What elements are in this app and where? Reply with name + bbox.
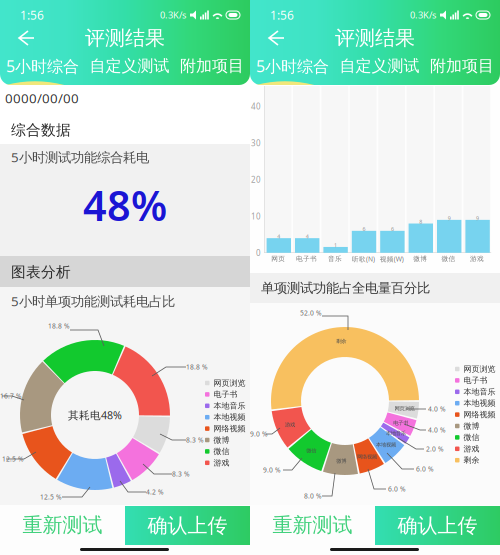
staticText: 1 — [334, 242, 337, 249]
staticText: 16.7 % — [0, 392, 22, 400]
staticText: 重新测试 — [22, 513, 102, 537]
staticText: 网络视频 — [213, 424, 245, 433]
staticText: 网页 — [271, 255, 285, 263]
staticText: 本地音乐 — [463, 387, 495, 397]
staticText: 1:56 — [270, 7, 294, 23]
button[interactable]: 5小时综合 — [256, 55, 329, 77]
staticText: 12.5 % — [40, 493, 62, 501]
staticText: 本地视频 — [376, 441, 396, 448]
staticText: 自定义测试 — [89, 56, 169, 76]
staticText: 6.0 % — [416, 465, 434, 473]
button[interactable]: 确认上传 — [375, 506, 500, 545]
staticText: 附加项目 — [180, 56, 244, 76]
staticText: 2.0 % — [426, 445, 444, 453]
staticText: 游戏 — [463, 444, 479, 454]
staticText: 40 — [251, 101, 261, 112]
staticText: 9.0 % — [250, 430, 268, 438]
staticText: 12.5 % — [2, 455, 24, 463]
staticText: 网页浏览 — [394, 405, 414, 412]
staticText: 确认上传 — [397, 513, 477, 538]
staticText: 18.8 % — [186, 363, 208, 371]
button[interactable]: 自定义测试 — [89, 56, 169, 76]
staticText: 52.0 % — [300, 309, 322, 317]
staticText: 微信 — [442, 255, 456, 263]
staticText: 18.8 % — [48, 322, 70, 330]
staticText: 网页浏览 — [463, 364, 495, 374]
staticText: 微博 — [463, 421, 479, 431]
staticText: 电子书 — [213, 389, 237, 399]
staticText: 本地音乐 — [213, 401, 245, 411]
button[interactable]: 重新测试 — [0, 505, 125, 545]
staticText: 本地视频 — [213, 412, 245, 422]
button[interactable]: Back — [14, 28, 40, 48]
staticText: 1:56 — [20, 7, 44, 23]
staticText: 电子书 — [393, 420, 408, 426]
staticText: 本地视频 — [463, 398, 495, 408]
staticText: 0.3K/s — [410, 9, 436, 21]
staticText: 剩余 — [463, 455, 479, 465]
staticText: 4.2 % — [146, 488, 164, 496]
staticText: 6 — [391, 225, 394, 233]
staticText: 5小时综合 — [6, 55, 79, 77]
staticText: 网络视频 — [357, 453, 377, 460]
staticText: 网络视频 — [463, 410, 495, 419]
staticText: 5小时综合 — [256, 55, 329, 77]
staticText: 0000/00/00 — [5, 89, 79, 107]
staticText: 4 — [306, 233, 309, 240]
button[interactable]: 附加项目 — [180, 56, 244, 76]
button[interactable]: 附加项目 — [430, 56, 494, 76]
staticText: 8.3 % — [172, 470, 190, 478]
staticText: 本地音乐 — [386, 430, 406, 436]
staticText: 微信 — [306, 447, 316, 454]
staticText: 综合数据 — [11, 121, 71, 139]
staticText: 4.0 % — [428, 426, 446, 434]
staticText: 8 — [419, 218, 422, 225]
staticText: 游戏 — [213, 458, 229, 468]
staticText: 5小时测试功能综合耗电 — [11, 148, 149, 166]
staticText: 48% — [83, 178, 167, 232]
staticText: 确认上传 — [147, 513, 227, 538]
staticText: 音乐 — [328, 255, 342, 263]
staticText: 听歌(N) — [352, 254, 375, 263]
staticText: 30 — [251, 138, 261, 148]
staticText: 电子书 — [463, 375, 487, 385]
staticText: 重新测试 — [272, 513, 352, 537]
staticText: 微博 — [413, 255, 427, 263]
staticText: 4 — [277, 233, 280, 240]
staticText: 微博 — [336, 458, 346, 464]
staticText: 0.3K/s — [160, 9, 186, 21]
staticText: 9 — [476, 214, 479, 222]
staticText: 20 — [251, 174, 261, 185]
staticText: 电子书 — [296, 255, 317, 263]
staticText: 8.3 % — [186, 436, 204, 444]
staticText: 游戏 — [470, 255, 484, 263]
staticText: 0 — [256, 248, 261, 258]
staticText: 自定义测试 — [339, 56, 419, 76]
button[interactable]: 自定义测试 — [339, 56, 419, 76]
staticText: 图表分析 — [11, 263, 71, 281]
staticText: 微信 — [213, 446, 229, 456]
staticText: 其耗电48% — [68, 408, 122, 422]
staticText: 6.0 % — [388, 485, 406, 493]
staticText: 微信 — [463, 432, 479, 442]
staticText: 网页浏览 — [213, 378, 245, 388]
button[interactable]: Back — [264, 28, 290, 48]
staticText: 6 — [362, 225, 365, 233]
staticText: 单项测试功能占全电量百分比 — [261, 280, 430, 296]
button[interactable]: 重新测试 — [250, 505, 375, 545]
staticText: 8.0 % — [304, 492, 322, 500]
button[interactable]: 确认上传 — [125, 506, 250, 545]
staticText: 5小时单项功能测试耗电占比 — [11, 292, 175, 310]
staticText: 4.0 % — [428, 405, 446, 413]
staticText: 微博 — [213, 435, 229, 445]
staticText: 附加项目 — [430, 56, 494, 76]
staticText: 视频(W) — [380, 254, 404, 263]
button[interactable]: 5小时综合 — [6, 55, 79, 77]
staticText: 9.0 % — [263, 466, 281, 474]
staticText: 评测结果 — [335, 26, 415, 50]
staticText: 9 — [448, 214, 451, 222]
staticText: 评测结果 — [85, 26, 165, 50]
staticText: 剩余 — [336, 338, 346, 344]
staticText: 游戏 — [285, 422, 295, 428]
staticText: 10 — [251, 211, 261, 222]
